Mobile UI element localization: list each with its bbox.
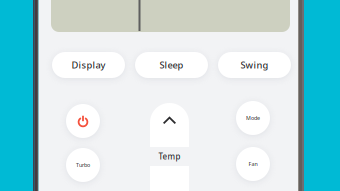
button[interactable]: Swing	[218, 52, 291, 78]
button[interactable]: Mode	[236, 101, 270, 135]
button[interactable]: Sleep	[135, 52, 208, 78]
button[interactable]: Fan	[236, 147, 270, 181]
button[interactable]: Power	[66, 104, 100, 138]
staticText: Temp	[158, 151, 180, 162]
staticText: Swing	[240, 59, 268, 71]
button[interactable]: Temperature up	[150, 103, 189, 147]
staticText: Fan	[248, 160, 257, 168]
staticText: Turbo	[76, 161, 90, 169]
staticText: Display	[71, 59, 105, 71]
staticText: Mode	[246, 114, 260, 122]
staticText: Sleep	[159, 59, 183, 71]
button[interactable]: Turbo	[66, 148, 100, 182]
button[interactable]: Display	[52, 52, 125, 78]
